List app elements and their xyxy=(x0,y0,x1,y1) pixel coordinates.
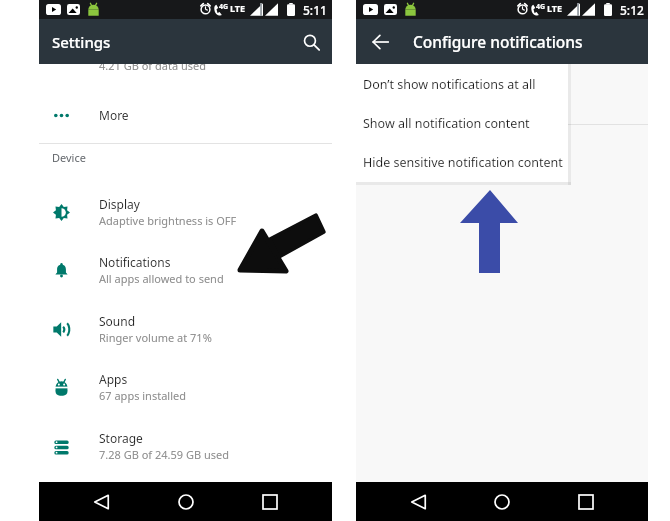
staticText: 4G xyxy=(536,2,546,12)
staticText: 5:11 xyxy=(303,2,327,18)
staticText: LTE xyxy=(547,2,563,14)
button[interactable]: Navigate up xyxy=(362,23,400,61)
staticText: Show all notification content xyxy=(363,115,530,132)
staticText: Settings xyxy=(52,32,111,52)
button[interactable]: Hide sensitive notification content xyxy=(356,147,568,177)
staticText: Sound xyxy=(99,313,136,329)
button[interactable]: More xyxy=(39,95,332,135)
button[interactable]: Apps xyxy=(39,358,332,416)
button[interactable]: Storage xyxy=(39,417,332,475)
staticText: Device xyxy=(52,150,86,165)
button[interactable]: Home xyxy=(164,482,208,521)
staticText: Hide sensitive notification content xyxy=(363,154,563,171)
staticText: Adaptive brightness is OFF xyxy=(99,213,237,228)
staticText: Configure notifications xyxy=(413,31,583,52)
staticText: 5:12 xyxy=(620,2,644,18)
staticText: Apps xyxy=(99,371,128,387)
staticText: Display xyxy=(99,196,140,212)
staticText: 4.21 GB of data used xyxy=(99,58,206,73)
staticText: Don’t show notifications at all xyxy=(363,76,536,93)
staticText: 7.28 GB of 24.59 GB used xyxy=(99,447,230,462)
button[interactable]: Don’t show notifications at all xyxy=(356,69,568,99)
button[interactable]: Recent apps xyxy=(248,482,292,521)
staticText: Ringer volume at 71% xyxy=(99,330,212,345)
button[interactable]: Home xyxy=(480,482,524,521)
staticText: 67 apps installed xyxy=(99,388,186,403)
staticText: LTE xyxy=(230,2,246,14)
button[interactable]: Notifications xyxy=(39,241,332,299)
staticText: Notifications xyxy=(99,254,171,270)
button[interactable]: Back xyxy=(396,482,440,521)
staticText: More xyxy=(99,107,129,123)
button[interactable]: Recent apps xyxy=(564,482,608,521)
button[interactable]: Display xyxy=(39,183,332,241)
button[interactable]: Search xyxy=(290,21,332,63)
button[interactable]: Show all notification content xyxy=(356,108,568,138)
staticText: Storage xyxy=(99,430,143,446)
button[interactable]: Sound xyxy=(39,300,332,358)
staticText: 4G xyxy=(219,2,229,12)
staticText: All apps allowed to send xyxy=(99,271,224,286)
button[interactable]: Back xyxy=(79,482,123,521)
